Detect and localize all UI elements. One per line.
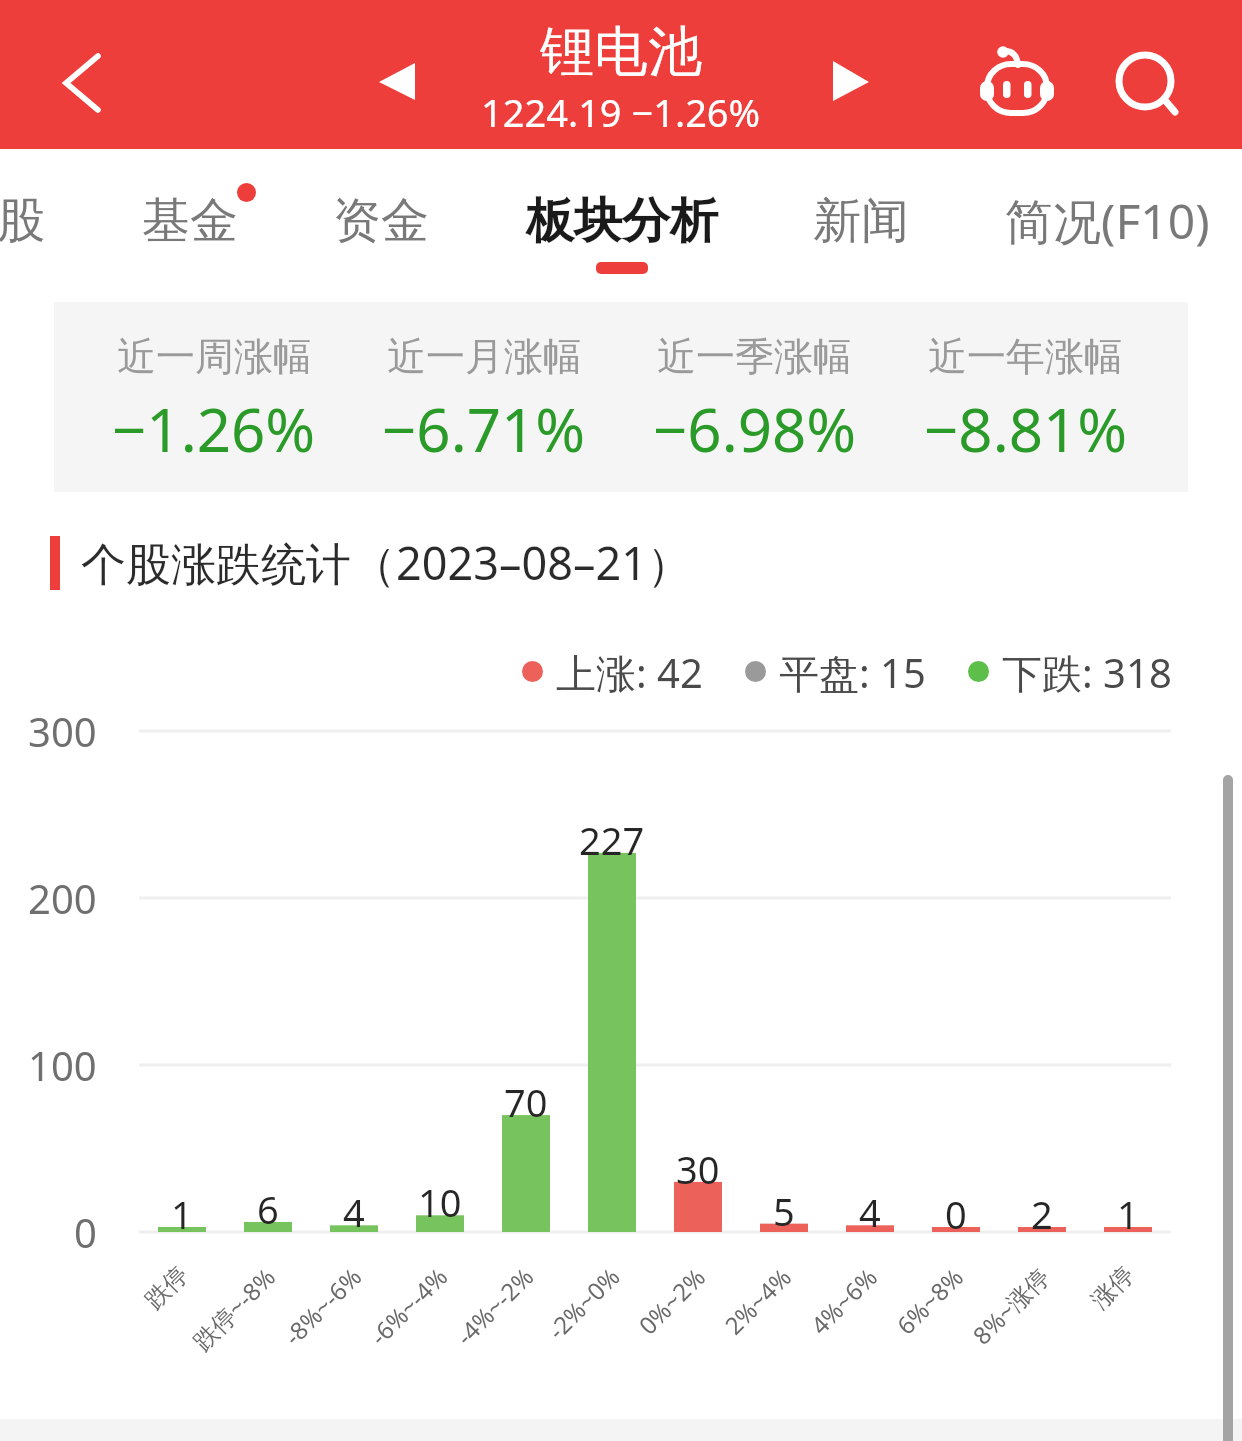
staticText: 4 xyxy=(859,1186,881,1234)
button[interactable]: 基金 xyxy=(60,160,320,305)
button[interactable]: Back xyxy=(36,38,128,130)
staticText: 5 xyxy=(773,1185,795,1233)
button[interactable]: Previous sector xyxy=(371,55,433,117)
staticText: 300 xyxy=(28,704,97,758)
button[interactable]: 近一年涨幅 xyxy=(890,332,1161,470)
staticText: 锂电池 xyxy=(540,18,702,86)
button[interactable]: 近一周涨幅 xyxy=(79,332,349,470)
staticText: 资金 xyxy=(333,191,429,251)
staticText: −6.98% xyxy=(653,388,857,470)
button[interactable]: Next sector xyxy=(825,53,887,115)
staticText: 6 xyxy=(257,1183,279,1231)
staticText: 近一周涨幅 xyxy=(117,332,312,381)
staticText: 10 xyxy=(418,1176,462,1224)
staticText: −6.71% xyxy=(382,388,586,470)
staticText: 近一月涨幅 xyxy=(387,332,582,381)
staticText: 近一季涨幅 xyxy=(657,332,852,381)
button[interactable]: 下跌: 318 xyxy=(968,645,1172,697)
staticText: 上涨: 42 xyxy=(556,645,703,697)
staticText: 200 xyxy=(28,871,97,925)
staticText: 0 xyxy=(945,1188,967,1236)
staticText: 1 xyxy=(1117,1188,1139,1236)
staticText: 1224.19 −1.26% xyxy=(481,86,761,138)
staticText: 下跌: 318 xyxy=(1002,645,1172,697)
staticText: 100 xyxy=(28,1038,97,1092)
button[interactable]: 简况(F10) xyxy=(977,160,1237,305)
staticText: 基金 xyxy=(142,191,238,251)
staticText: 股 xyxy=(0,191,45,251)
button[interactable]: Search xyxy=(1100,34,1194,128)
staticText: 2 xyxy=(1031,1188,1053,1236)
staticText: 近一年涨幅 xyxy=(928,332,1123,381)
button[interactable]: 上涨: 42 xyxy=(522,645,703,697)
button[interactable]: 板块分析 xyxy=(492,160,752,305)
button[interactable]: 近一季涨幅 xyxy=(619,332,890,470)
button[interactable]: 新闻 xyxy=(731,160,991,305)
staticText: 1 xyxy=(171,1188,193,1236)
staticText: −8.81% xyxy=(924,388,1128,470)
button[interactable]: AI assistant xyxy=(966,34,1070,138)
staticText: 227 xyxy=(579,814,645,862)
staticText: 30 xyxy=(676,1143,720,1191)
staticText: 个股涨跌统计（2023–08–21） xyxy=(81,532,692,593)
staticText: 4 xyxy=(343,1186,365,1234)
staticText: 0 xyxy=(74,1205,97,1259)
staticText: 平盘: 15 xyxy=(779,645,926,697)
button[interactable]: 股 xyxy=(0,160,151,305)
button[interactable]: 平盘: 15 xyxy=(745,645,926,697)
staticText: −1.26% xyxy=(112,388,316,470)
button[interactable]: 个股涨跌统计（2023–08–21） xyxy=(50,532,692,593)
staticText: 新闻 xyxy=(813,191,909,251)
button[interactable]: 资金 xyxy=(251,160,511,305)
button[interactable]: 近一月涨幅 xyxy=(349,332,619,470)
staticText: 70 xyxy=(504,1076,548,1124)
staticText: 简况(F10) xyxy=(1005,188,1210,254)
staticText: 板块分析 xyxy=(526,191,718,251)
